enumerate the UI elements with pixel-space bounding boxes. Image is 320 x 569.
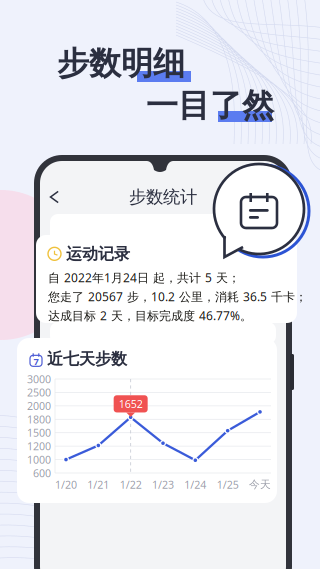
- staticText: 1/22: [120, 477, 142, 492]
- staticText: 达成目标 2 天，目标完成度 46.77%。: [48, 307, 252, 323]
- staticText: 1500: [27, 426, 51, 440]
- staticText: 1/25: [217, 477, 239, 492]
- button[interactable]: Back: [40, 183, 70, 211]
- staticText: 3000: [27, 372, 51, 386]
- staticText: 7: [33, 355, 38, 367]
- staticText: 步数明细: [57, 44, 185, 83]
- staticText: 1800: [27, 412, 51, 426]
- staticText: 1652: [119, 397, 143, 411]
- staticText: 2000: [27, 399, 51, 413]
- staticText: 2500: [27, 385, 51, 399]
- staticText: 一目了然: [146, 86, 274, 125]
- staticText: 运动记录: [66, 244, 130, 264]
- staticText: 您走了 20567 步，10.2 公里，消耗 36.5 千卡；: [48, 289, 307, 304]
- staticText: 步数统计: [129, 186, 197, 208]
- staticText: 自 2022年1月24日 起，共计 5 天；: [48, 270, 240, 286]
- staticText: 600: [33, 466, 51, 480]
- staticText: 1/20: [55, 477, 77, 492]
- staticText: 近七天步数: [47, 349, 127, 369]
- staticText: 今天: [249, 478, 271, 491]
- staticText: 1/21: [87, 477, 109, 492]
- staticText: 1/23: [152, 477, 174, 492]
- staticText: 1200: [27, 439, 51, 453]
- staticText: 1/24: [184, 477, 206, 492]
- staticText: 1000: [27, 452, 51, 467]
